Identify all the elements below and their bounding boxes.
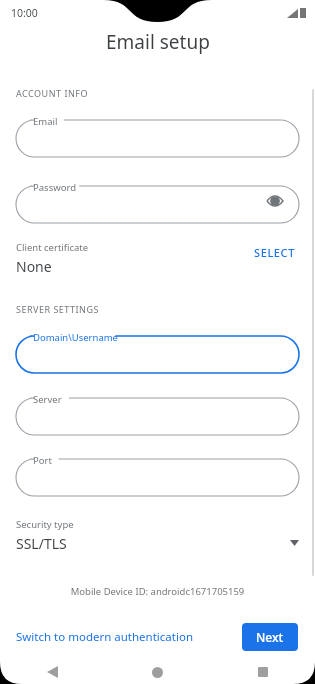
button[interactable]: SELECT	[250, 241, 299, 264]
staticText: SELECT	[254, 245, 295, 260]
staticText: Next	[256, 629, 284, 645]
staticText: Client certificate	[16, 241, 89, 254]
button[interactable]: Domain\Username	[16, 329, 299, 373]
staticText: Port	[33, 454, 52, 467]
button[interactable]: Back	[0, 660, 105, 684]
staticText: 10:00	[11, 6, 38, 20]
staticText: Security type	[16, 518, 74, 531]
staticText: None	[16, 257, 52, 276]
button[interactable]: Client certificate	[16, 241, 250, 276]
button[interactable]: Show password	[263, 189, 287, 213]
button[interactable]: Recent apps	[210, 660, 315, 684]
staticText: Switch to modern authentication	[16, 629, 193, 645]
staticText: SSL/TLS	[16, 534, 67, 553]
button[interactable]: Switch to modern authentication	[16, 623, 193, 651]
staticText: Domain\Username	[33, 331, 118, 344]
staticText: Email	[33, 115, 58, 128]
button[interactable]: Password	[16, 179, 299, 223]
button[interactable]: Port	[16, 452, 299, 496]
button[interactable]: Server	[16, 391, 299, 435]
staticText: Password	[33, 181, 76, 194]
button[interactable]: Next	[242, 623, 298, 651]
staticText: Server	[33, 393, 62, 406]
button[interactable]: Home	[105, 660, 210, 684]
button[interactable]: Email	[16, 113, 299, 157]
staticText: ACCOUNT INFO	[16, 87, 88, 99]
staticText: SERVER SETTINGS	[16, 303, 99, 315]
staticText: Mobile Device ID: androidc1671705159	[0, 585, 315, 598]
staticText: Email setup	[106, 29, 210, 55]
button[interactable]: Security type	[0, 518, 315, 558]
